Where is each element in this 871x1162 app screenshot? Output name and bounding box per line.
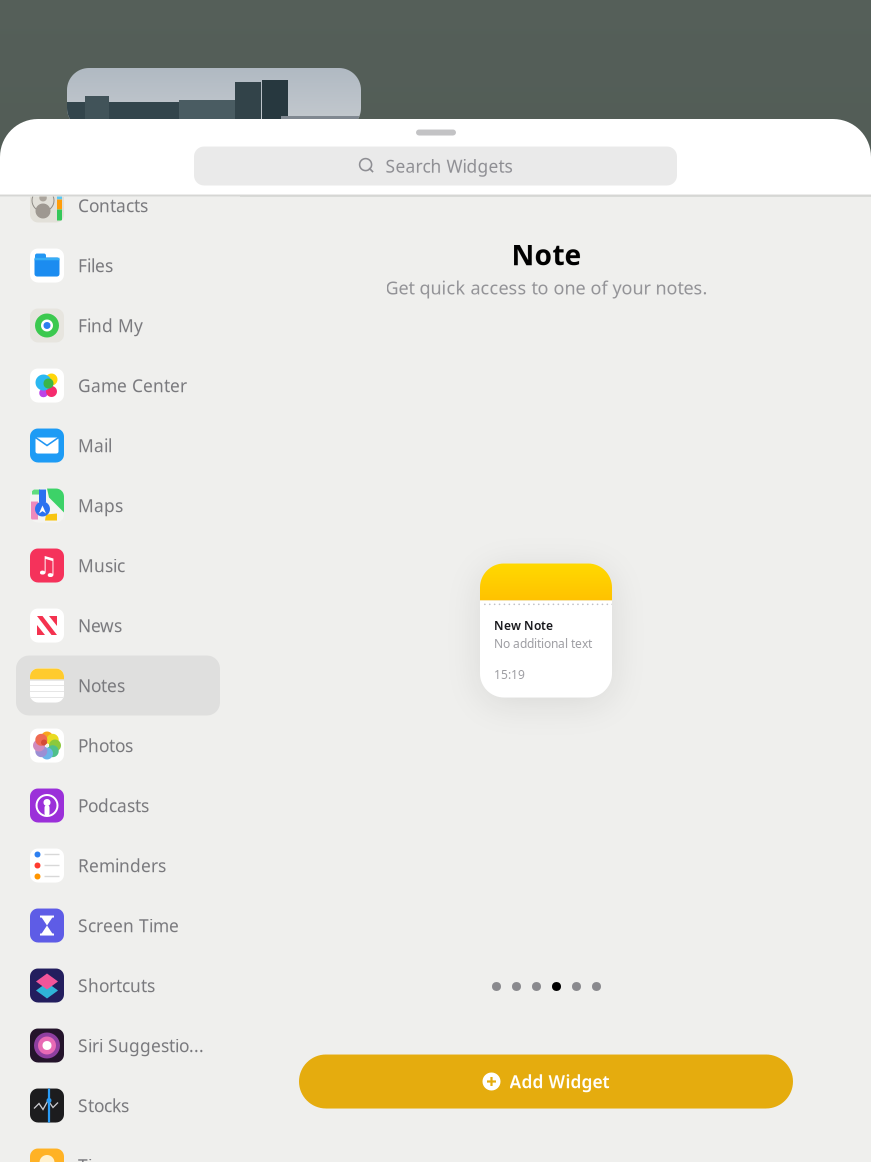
staticText: Reminders	[78, 854, 166, 877]
staticText: Add Widget	[509, 1070, 609, 1093]
staticText: Photos	[78, 734, 133, 757]
staticText: Game Center	[78, 374, 187, 397]
button[interactable]: Stocks	[16, 1075, 220, 1135]
button[interactable]: Files	[16, 235, 220, 295]
staticText: ♫	[35, 551, 58, 580]
staticText: New Note	[494, 617, 553, 633]
staticText: Mail	[78, 434, 112, 457]
staticText: Note	[511, 236, 581, 273]
staticText: Contacts	[78, 194, 148, 217]
button[interactable]: Contacts	[16, 175, 220, 235]
button[interactable]: Find My	[16, 295, 220, 355]
button[interactable]: Shortcuts	[16, 955, 220, 1015]
staticText: 15:19	[494, 666, 525, 682]
staticText: Search Widgets	[385, 154, 512, 177]
button[interactable]: Search Widgets	[194, 146, 677, 185]
button[interactable]: Reminders	[16, 835, 220, 895]
staticText: Siri Suggestio...	[78, 1034, 204, 1057]
staticText: Tips	[78, 1154, 111, 1162]
button[interactable]: Notes	[16, 655, 220, 715]
button[interactable]: Maps	[16, 475, 220, 535]
staticText: Screen Time	[78, 914, 179, 937]
button[interactable]: Add Widget	[299, 1054, 793, 1108]
staticText: News	[78, 614, 122, 637]
button[interactable]: News	[16, 595, 220, 655]
staticText: Files	[78, 254, 113, 277]
button[interactable]: Screen Time	[16, 895, 220, 955]
button[interactable]: Siri Suggestio...	[16, 1015, 220, 1075]
button[interactable]: Photos	[16, 715, 220, 775]
button[interactable]: Tips	[16, 1135, 220, 1162]
staticText: Shortcuts	[78, 974, 155, 997]
staticText: Get quick access to one of your notes.	[385, 275, 707, 299]
staticText: Music	[78, 554, 125, 577]
staticText: Find My	[78, 314, 143, 337]
staticText: Notes	[78, 674, 125, 697]
button[interactable]: Mail	[16, 415, 220, 475]
staticText: Podcasts	[78, 794, 149, 817]
button[interactable]: Game Center	[16, 355, 220, 415]
button[interactable]: ♫	[16, 535, 220, 595]
staticText: Stocks	[78, 1094, 129, 1117]
staticText: No additional text	[494, 635, 592, 651]
button[interactable]: Podcasts	[16, 775, 220, 835]
staticText: Maps	[78, 494, 123, 517]
